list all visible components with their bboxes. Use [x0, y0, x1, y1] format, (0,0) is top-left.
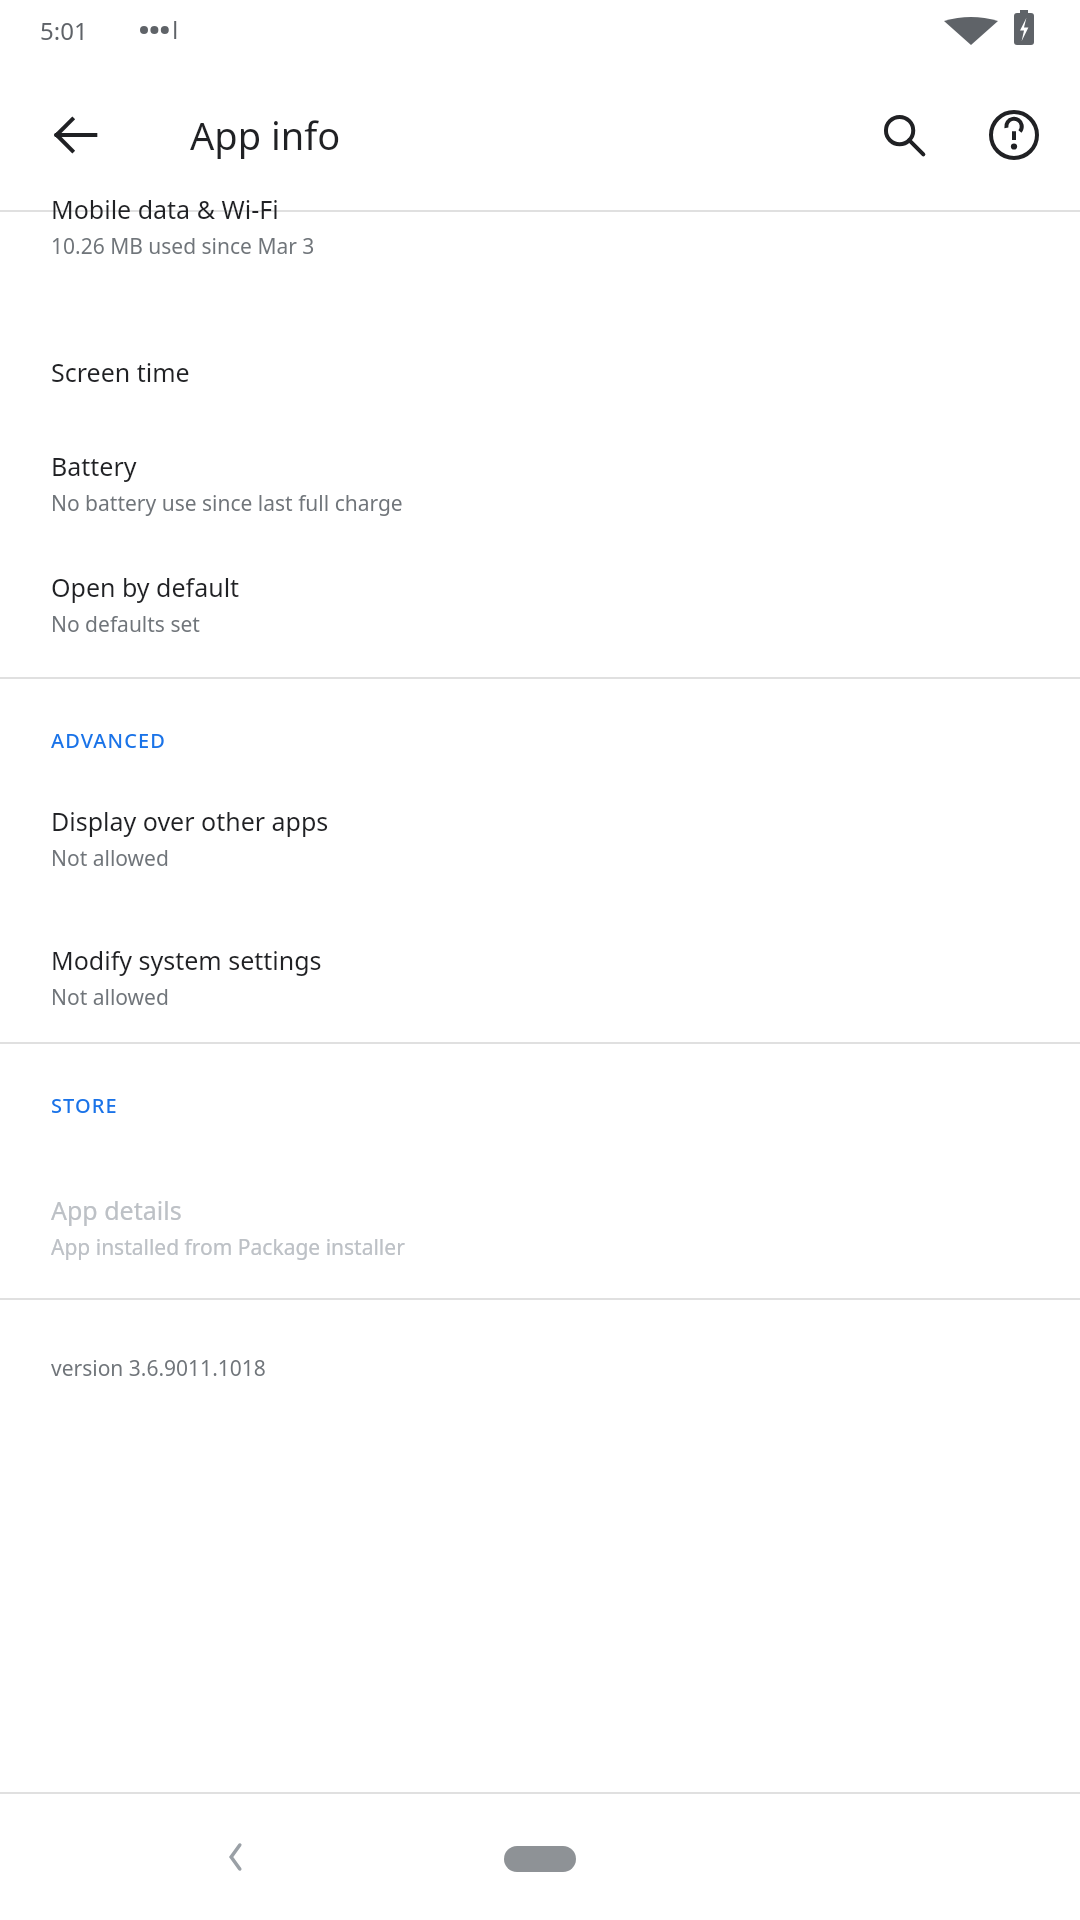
button[interactable]: Open by default	[0, 542, 1080, 677]
staticText: App installed from Package installer	[51, 1233, 405, 1262]
staticText: Not allowed	[51, 983, 169, 1012]
staticText: Screen time	[51, 355, 190, 389]
button[interactable]: Modify system settings	[0, 903, 1080, 1042]
staticText: ADVANCED	[51, 727, 166, 754]
staticText: Not allowed	[51, 844, 169, 873]
staticText: Battery	[51, 449, 137, 483]
staticText: Open by default	[51, 570, 240, 604]
button[interactable]: Screen time	[0, 309, 1080, 435]
staticText: App details	[51, 1193, 182, 1227]
staticText: App info	[190, 109, 341, 161]
button[interactable]: Mobile data & Wi-Fi	[0, 212, 1080, 309]
staticText: Mobile data & Wi-Fi	[51, 192, 279, 226]
staticText: Modify system settings	[51, 943, 322, 977]
button[interactable]: Home	[465, 1817, 615, 1897]
staticText: No battery use since last full charge	[51, 489, 403, 518]
staticText: version 3.6.9011.1018	[51, 1354, 266, 1383]
staticText: STORE	[51, 1092, 118, 1119]
button[interactable]: Help	[966, 87, 1062, 183]
button[interactable]: Back	[30, 89, 122, 181]
button[interactable]: Display over other apps	[0, 784, 1080, 903]
button[interactable]: App details	[0, 1149, 1080, 1298]
staticText: 10.26 MB used since Mar 3	[51, 232, 315, 261]
button[interactable]: Back	[175, 1797, 295, 1917]
staticText: Display over other apps	[51, 804, 329, 838]
button[interactable]: Battery	[0, 435, 1080, 542]
staticText: 5:01	[40, 14, 88, 47]
staticText: No defaults set	[51, 610, 200, 639]
button[interactable]: Search	[856, 87, 952, 183]
